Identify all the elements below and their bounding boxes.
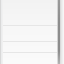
- button[interactable]: [3, 26, 57, 42]
- button[interactable]: [3, 42, 57, 53]
- button[interactable]: [3, 0, 57, 64]
- other: Scroll position: [57, 0, 61, 64]
- button[interactable]: [3, 0, 57, 26]
